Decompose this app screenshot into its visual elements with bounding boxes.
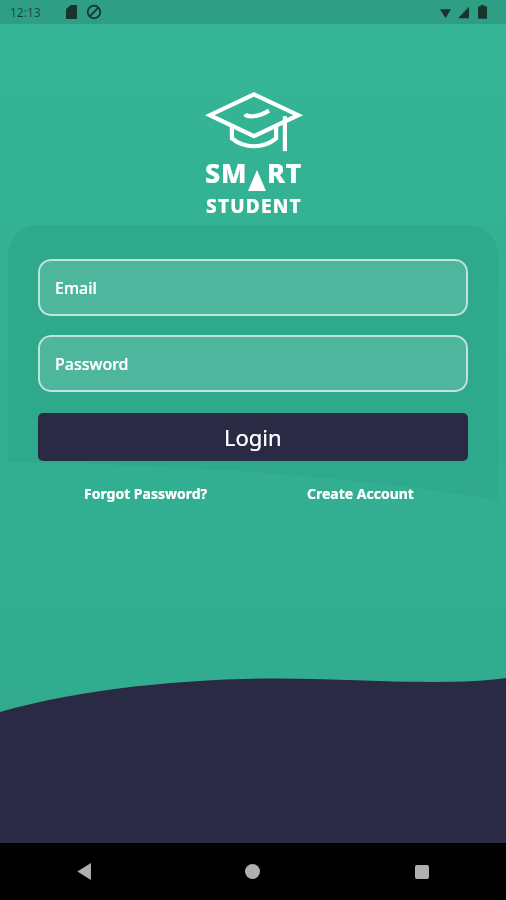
staticText: SM (205, 154, 247, 191)
staticText: Create Account (307, 484, 414, 503)
staticText: Password (55, 353, 129, 375)
button[interactable]: Home (168, 843, 337, 900)
staticText: Forgot Password? (84, 484, 208, 503)
staticText: Email (55, 277, 97, 299)
staticText: Login (224, 422, 282, 452)
button[interactable]: Create Account (253, 484, 468, 503)
button[interactable]: Forgot Password? (38, 484, 253, 503)
button[interactable]: Password (38, 335, 468, 392)
staticText: RT (267, 154, 302, 191)
button[interactable]: Login (38, 413, 468, 461)
staticText: 12:13 (10, 4, 41, 20)
button[interactable]: Back (0, 843, 168, 900)
staticText: STUDENT (206, 193, 302, 219)
button[interactable]: Email (38, 259, 468, 316)
button[interactable]: Recents (337, 843, 506, 900)
